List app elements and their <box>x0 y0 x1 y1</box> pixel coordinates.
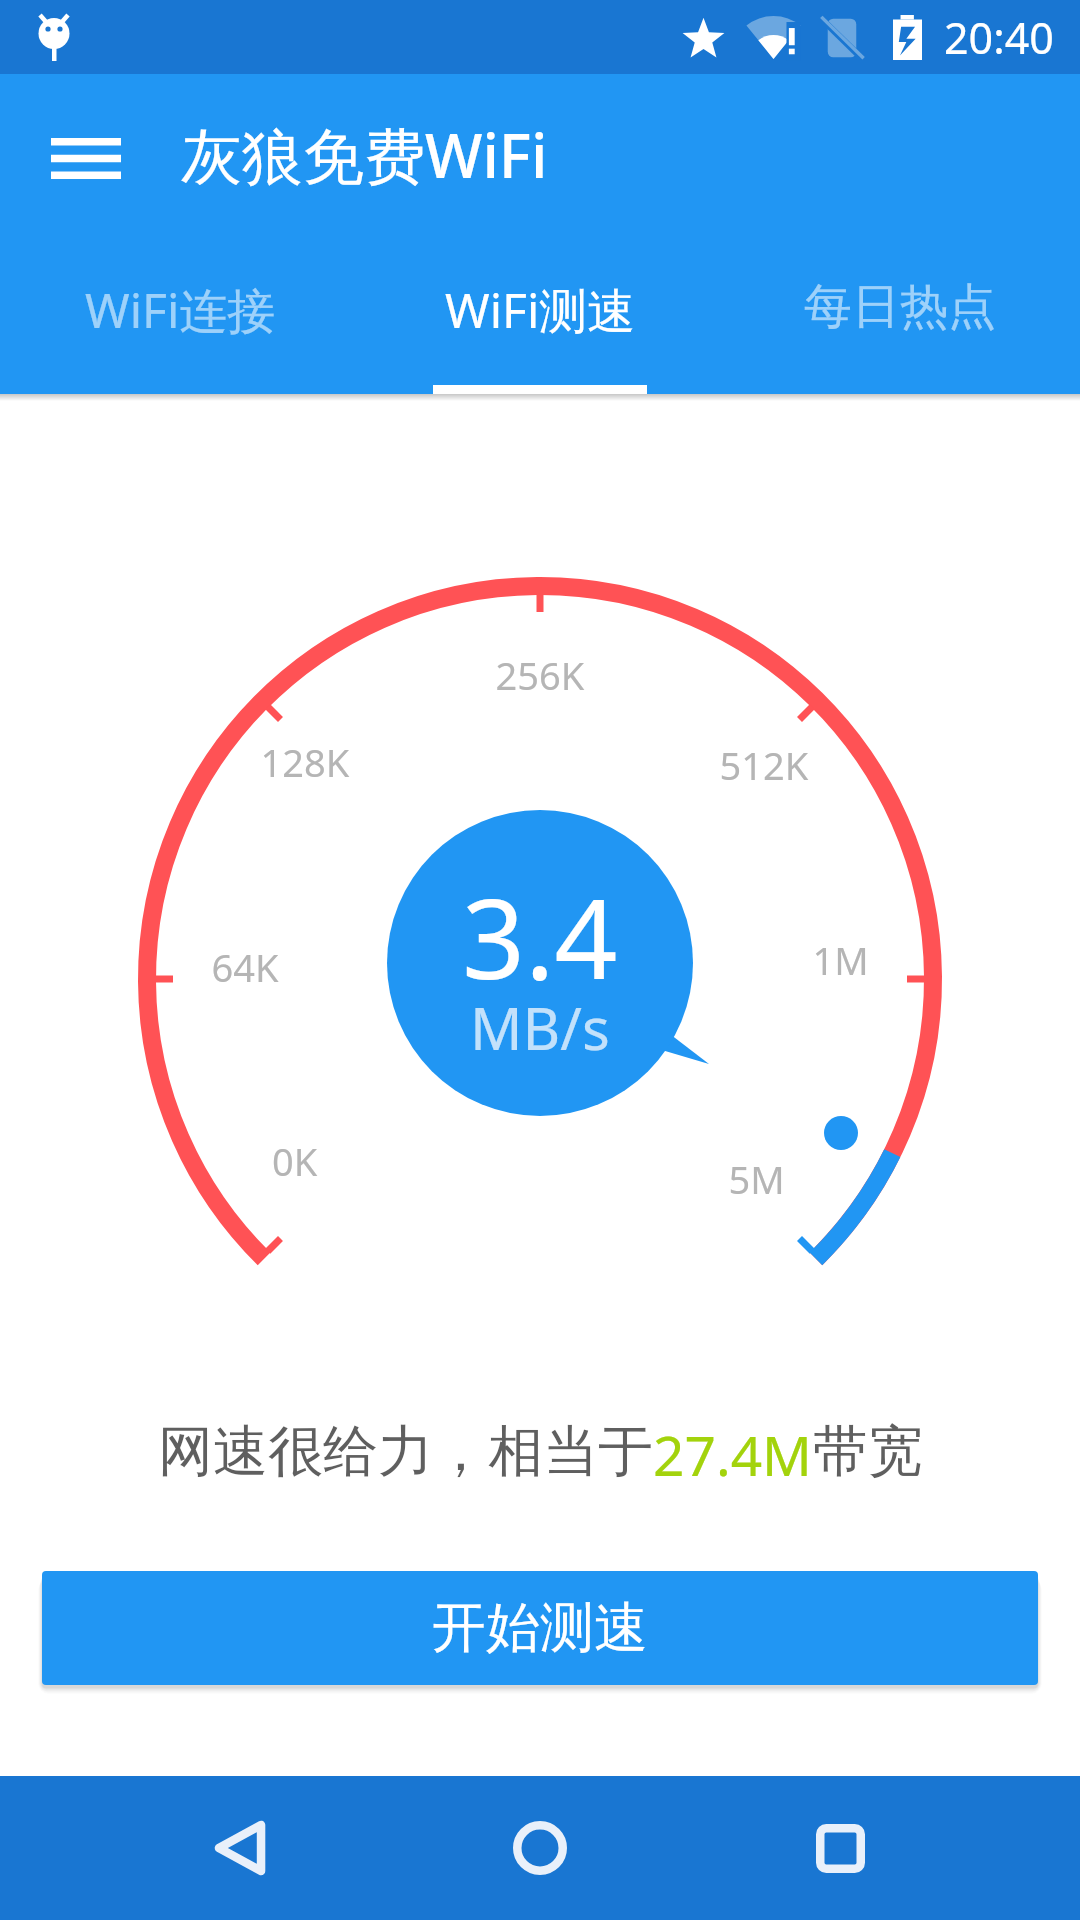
staticText: 开始测速 <box>432 1594 648 1662</box>
staticText: 网速很给力，相当于 <box>158 1417 653 1486</box>
button[interactable]: WiFi连接 <box>0 242 360 394</box>
staticText: 带宽 <box>813 1417 923 1486</box>
button[interactable]: Open navigation drawer <box>22 94 150 222</box>
staticText: WiFi连接 <box>85 277 276 343</box>
staticText: WiFi测速 <box>445 277 636 343</box>
button[interactable]: WiFi测速 <box>360 242 720 394</box>
button[interactable]: 每日热点 <box>720 242 1080 394</box>
staticText: 每日热点 <box>804 277 996 337</box>
staticText: 20:40 <box>944 8 1054 67</box>
staticText: 灰狼免费WiFi <box>181 113 548 196</box>
button[interactable]: Back <box>168 1776 312 1920</box>
button[interactable]: Recent apps <box>768 1776 912 1920</box>
button[interactable]: Home <box>468 1776 612 1920</box>
button[interactable]: 开始测速 <box>42 1571 1038 1685</box>
staticText: 27.4M <box>653 1417 813 1492</box>
